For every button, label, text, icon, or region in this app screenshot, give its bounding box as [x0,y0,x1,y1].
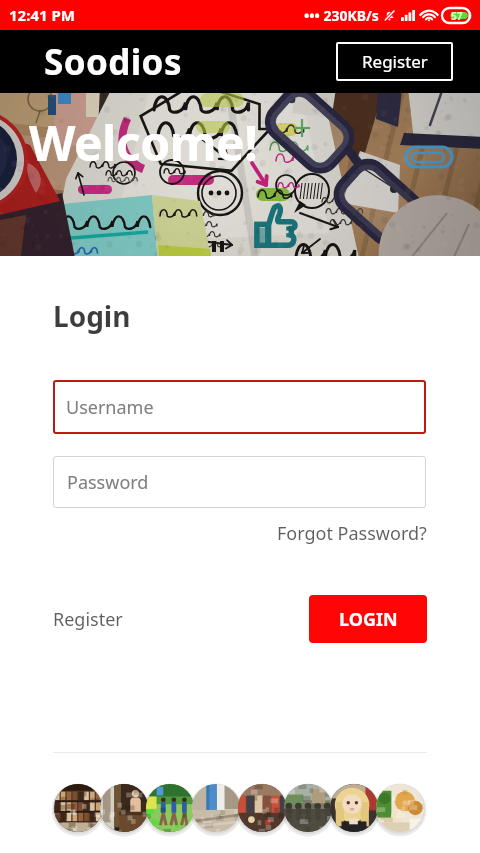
staticText: 57 [451,9,463,23]
button[interactable]: Story 1 [54,784,102,832]
staticText: Register [362,50,428,73]
button[interactable]: Story 4 [192,784,240,832]
staticText: ••• 230KB/s [304,6,379,25]
button[interactable]: Story 7 [330,784,378,832]
button[interactable]: Password [53,456,426,508]
staticText: Login [53,297,131,335]
staticText: Soodios [44,38,182,86]
button[interactable]: Register [336,42,453,81]
button[interactable]: Story 3 [146,784,194,832]
staticText: Welcome! [29,110,258,175]
staticText: Username [66,395,154,420]
button[interactable]: Forgot Password? [269,513,435,554]
button[interactable]: Username [53,380,426,434]
staticText: Password [67,470,149,495]
staticText: Register [53,607,123,632]
button[interactable]: Register [45,597,131,642]
staticText: LOGIN [339,607,398,632]
button[interactable]: LOGIN [309,595,427,643]
button[interactable]: Story 8 [376,784,424,832]
staticText: Forgot Password? [277,521,427,546]
staticText: 12:41 PM [9,5,75,25]
button[interactable]: Story 2 [100,784,148,832]
button[interactable]: Story 5 [238,784,286,832]
button[interactable]: Story 6 [284,784,332,832]
